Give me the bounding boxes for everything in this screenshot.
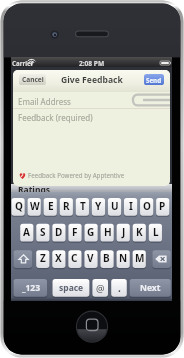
button[interactable]: D [52, 224, 65, 242]
button[interactable]: U [108, 198, 121, 216]
staticText: Give Feedback [61, 74, 123, 86]
staticText: V [87, 251, 94, 265]
button[interactable]: Q [12, 198, 25, 216]
button[interactable]: Y [92, 198, 105, 216]
button[interactable]: Z [36, 250, 49, 268]
button[interactable]: Next [130, 279, 171, 297]
staticText: U [111, 199, 119, 213]
staticText: Y [95, 199, 102, 213]
staticText: Cancel [22, 75, 44, 84]
button[interactable]: I [124, 198, 137, 216]
staticText: P [159, 199, 166, 213]
staticText: X [55, 251, 62, 265]
staticText: I [129, 199, 133, 213]
button[interactable]: N [117, 250, 130, 268]
staticText: W [30, 199, 40, 213]
button[interactable]: G [84, 224, 97, 242]
staticText: Next [140, 282, 161, 294]
button[interactable]: S [36, 224, 49, 242]
button[interactable]: A [20, 224, 33, 242]
staticText: E [48, 199, 54, 213]
button[interactable]: F [68, 224, 81, 242]
button[interactable]: O [140, 198, 153, 216]
button[interactable]: M [133, 250, 146, 268]
staticText: Q [15, 199, 23, 213]
staticText: Z [40, 251, 46, 265]
button[interactable]: W [28, 198, 41, 216]
button[interactable]: Feedback (required) [13, 109, 170, 165]
button[interactable]: Shift [14, 250, 33, 268]
staticText: 2:08 PM [11, 59, 172, 67]
staticText: _123 [22, 282, 41, 294]
staticText: N [119, 251, 128, 265]
staticText: Email Address [18, 96, 71, 107]
staticText: H [104, 225, 112, 239]
button[interactable]: @ [92, 279, 108, 297]
button[interactable]: X [52, 250, 65, 268]
staticText: M [135, 251, 145, 265]
button[interactable]: H [101, 224, 114, 242]
button[interactable]: Cancel [19, 74, 46, 85]
button[interactable]: Email Address [13, 92, 170, 108]
button[interactable]: Send [144, 74, 164, 85]
button[interactable]: Backspace [152, 250, 170, 268]
button[interactable]: V [84, 250, 97, 268]
staticText: Carrier [12, 59, 34, 67]
button[interactable]: P [156, 198, 169, 216]
staticText: F [72, 225, 78, 239]
button[interactable]: K [133, 224, 146, 242]
staticText: L [153, 225, 159, 239]
staticText: G [87, 225, 95, 239]
button[interactable]: T [76, 198, 89, 216]
staticText: C [71, 251, 78, 265]
staticText: D [55, 225, 63, 239]
staticText: Feedback Powered by Apptentive [28, 171, 125, 179]
staticText: . [118, 281, 121, 295]
staticText: space [59, 282, 84, 294]
staticText: Ratings [18, 184, 51, 196]
button[interactable]: . [111, 279, 127, 297]
staticText: @ [96, 282, 105, 295]
staticText: Send [146, 76, 162, 84]
button[interactable]: J [117, 224, 130, 242]
staticText: K [136, 225, 143, 239]
staticText: Feedback (required) [18, 112, 93, 123]
button[interactable]: E [44, 198, 57, 216]
button[interactable]: R [60, 198, 73, 216]
button[interactable]: space [53, 279, 90, 297]
button[interactable]: C [68, 250, 81, 268]
staticText: T [80, 199, 86, 213]
button[interactable]: L [149, 224, 162, 242]
staticText: O [143, 199, 151, 213]
staticText: J [122, 225, 126, 239]
button[interactable]: _123 [14, 279, 48, 297]
staticText: A [23, 225, 30, 239]
staticText: R [63, 199, 70, 213]
staticText: B [103, 251, 110, 265]
staticText: S [40, 225, 46, 239]
button[interactable]: B [100, 250, 113, 268]
